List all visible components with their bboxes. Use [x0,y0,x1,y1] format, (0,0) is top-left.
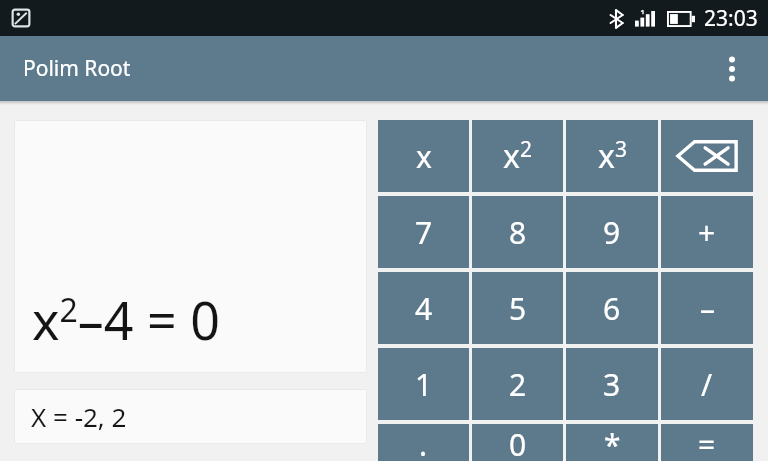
button[interactable]: = [661,424,753,461]
staticText: x3 [598,134,627,178]
staticText: 0 [509,424,527,461]
staticText: 9 [603,212,621,253]
staticText: 6 [603,288,621,329]
other: Screenshot [10,7,32,29]
button[interactable]: x [378,120,469,192]
staticText: 1 [415,364,433,405]
button[interactable]: 6 [566,272,658,344]
staticText: Polim Root [23,54,131,83]
button[interactable]: 2 [472,348,563,420]
button[interactable]: . [378,424,469,461]
button[interactable]: 4 [378,272,469,344]
staticText: 23:03 [704,4,758,33]
staticText: x [416,136,432,177]
staticText: 3 [603,364,621,405]
staticText: 8 [509,212,527,253]
staticText: 5 [509,288,527,329]
button[interactable]: / [661,348,753,420]
button[interactable]: x2 [472,120,563,192]
button[interactable]: * [566,424,658,461]
staticText: / [701,364,713,405]
button[interactable]: 9 [566,196,658,268]
staticText: = [698,424,716,461]
button[interactable]: 1 [378,348,469,420]
staticText: x2 [503,134,532,178]
button[interactable]: 5 [472,272,563,344]
staticText: 7 [415,212,433,253]
staticText: 4 [415,288,433,329]
staticText: X = -2, 2 [31,399,127,434]
button[interactable]: More options [710,47,754,91]
staticText: * [604,424,621,461]
staticText: . [419,424,428,461]
button[interactable]: x3 [566,120,658,192]
button[interactable]: 8 [472,196,563,268]
staticText: + [698,212,716,253]
button[interactable]: X = -2, 2 [14,389,367,444]
button[interactable]: Backspace [661,120,753,192]
staticText: x2–4 = 0 [32,284,221,355]
staticText: 2 [509,364,527,405]
button[interactable]: – [661,272,753,344]
button[interactable]: x2–4 = 0 [14,120,367,373]
button[interactable]: + [661,196,753,268]
staticText: – [700,288,715,329]
button[interactable]: 0 [472,424,563,461]
button[interactable]: 7 [378,196,469,268]
button[interactable]: 3 [566,348,658,420]
